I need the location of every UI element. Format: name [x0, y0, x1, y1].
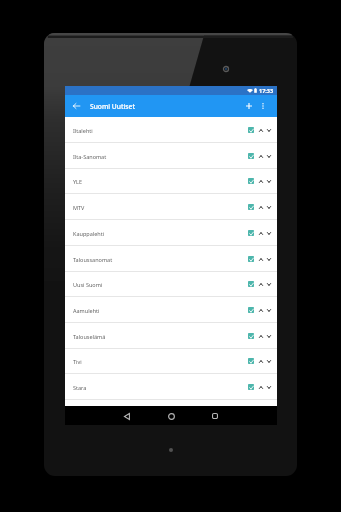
button[interactable]: Enable Kauppalehti [244, 223, 258, 243]
button[interactable]: Move down Kauppalehti [264, 223, 274, 243]
staticText: Aamulehti [73, 307, 100, 314]
staticText: Suomi Uutiset [90, 102, 135, 111]
button[interactable]: Move down YLE [264, 171, 274, 191]
button[interactable]: MTV [65, 194, 277, 220]
button[interactable]: Enable Taloussanomat [244, 249, 258, 269]
staticText: MTV [73, 204, 85, 211]
button[interactable]: Move up Kauppalehti [256, 223, 266, 243]
staticText: Iltalehti [73, 127, 93, 134]
button[interactable]: Move down Talouselämä [264, 326, 274, 346]
button[interactable]: Move down Stara [264, 377, 274, 397]
button[interactable]: Enable Tivi [244, 351, 258, 371]
button[interactable]: Enable Iltalehti [244, 120, 258, 140]
button[interactable]: Tivi [65, 348, 277, 374]
button[interactable]: Move up Iltalehti [256, 120, 266, 140]
button[interactable]: Move down Uusi Suomi [264, 274, 274, 294]
button[interactable]: Add [242, 95, 255, 117]
staticText: Talouselämä [73, 333, 106, 340]
button[interactable]: Move up Talouselämä [256, 326, 266, 346]
staticText: Tivi [73, 358, 82, 365]
button[interactable]: More options [257, 95, 269, 117]
button[interactable]: Move down Tivi [264, 351, 274, 371]
button[interactable]: Enable MTV [244, 197, 258, 217]
button[interactable]: Kauppalehti [65, 220, 277, 246]
button[interactable]: Move down Aamulehti [264, 300, 274, 320]
staticText: Ilta-Sanomat [73, 153, 107, 160]
button[interactable]: YLE [65, 168, 277, 194]
staticText: Kauppalehti [73, 230, 105, 237]
button[interactable]: Stara [65, 374, 277, 400]
button[interactable]: Enable Stara [244, 377, 258, 397]
button[interactable]: Uusi Suomi [65, 271, 277, 297]
staticText: YLE [73, 178, 83, 185]
button[interactable]: Enable Aamulehti [244, 300, 258, 320]
button[interactable]: Move down Iltalehti [264, 120, 274, 140]
button[interactable]: Enable YLE [244, 171, 258, 191]
button[interactable]: Move down Taloussanomat [264, 249, 274, 269]
button[interactable]: Back [118, 407, 136, 425]
button[interactable]: Aamulehti [65, 297, 277, 323]
button[interactable]: Move down Ilta-Sanomat [264, 146, 274, 166]
button[interactable]: Move down MTV [264, 197, 274, 217]
button[interactable]: Ilta-Sanomat [65, 143, 277, 169]
staticText: Taloussanomat [73, 256, 113, 263]
button[interactable]: Recent apps [206, 407, 224, 425]
button[interactable]: Home [162, 407, 180, 425]
button[interactable]: Taloussanomat [65, 246, 277, 272]
button[interactable]: Move up Stara [256, 377, 266, 397]
button[interactable]: Enable Ilta-Sanomat [244, 146, 258, 166]
button[interactable]: Talouselämä [65, 323, 277, 349]
staticText: Uusi Suomi [73, 281, 103, 288]
staticText: Stara [73, 384, 87, 391]
button[interactable]: Navigate up [70, 95, 83, 117]
button[interactable]: Move up Uusi Suomi [256, 274, 266, 294]
button[interactable]: Move up MTV [256, 197, 266, 217]
button[interactable]: Iltalehti [65, 117, 277, 143]
button[interactable]: Enable Uusi Suomi [244, 274, 258, 294]
button[interactable]: Enable Talouselämä [244, 326, 258, 346]
staticText: 17:33 [259, 87, 274, 94]
button[interactable]: Move up Aamulehti [256, 300, 266, 320]
button[interactable]: Move up YLE [256, 171, 266, 191]
button[interactable]: Move up Taloussanomat [256, 249, 266, 269]
button[interactable]: Move up Ilta-Sanomat [256, 146, 266, 166]
button[interactable]: Move up Tivi [256, 351, 266, 371]
